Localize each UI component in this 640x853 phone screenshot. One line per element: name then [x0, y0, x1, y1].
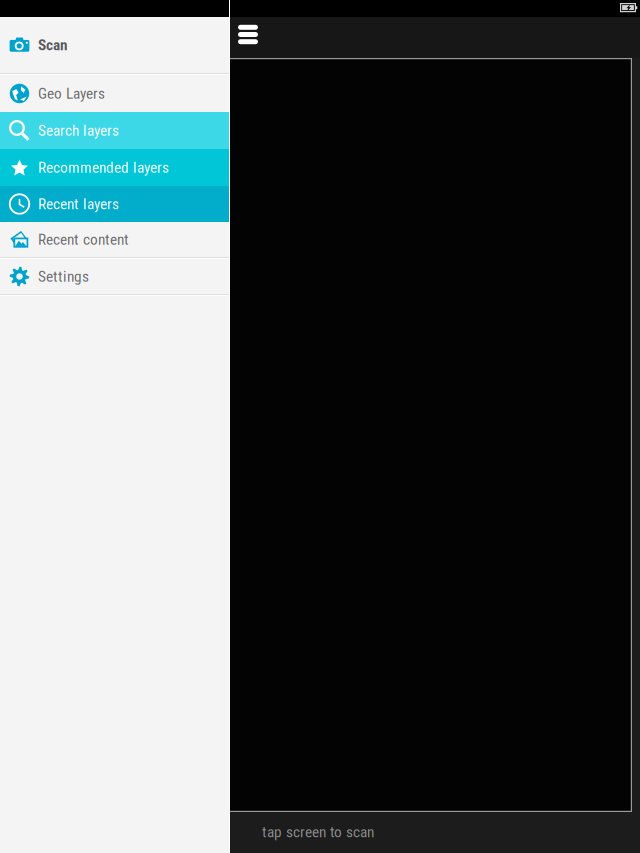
button[interactable]: Recent content — [0, 222, 229, 257]
staticText: Recent content — [38, 230, 129, 248]
staticText: Recommended layers — [38, 158, 169, 176]
staticText: Scan — [38, 36, 68, 54]
button[interactable]: Recent layers — [0, 186, 229, 222]
button[interactable]: Settings — [0, 259, 229, 294]
button[interactable]: Scan — [0, 17, 229, 73]
staticText: tap screen to scan — [262, 823, 374, 841]
staticText: Recent layers — [38, 195, 119, 213]
button[interactable]: Geo Layers — [0, 75, 229, 112]
staticText: Settings — [38, 267, 89, 285]
button[interactable]: Search layers — [0, 112, 229, 149]
staticText: Geo Layers — [38, 84, 105, 102]
staticText: Search layers — [38, 121, 119, 139]
button[interactable]: Menu — [231, 18, 265, 57]
button[interactable]: Recommended layers — [0, 149, 229, 186]
